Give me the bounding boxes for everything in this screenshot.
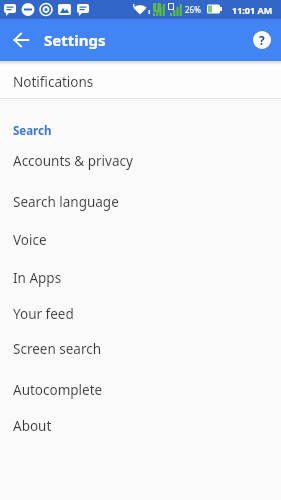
staticText: Settings — [44, 30, 106, 50]
staticText: About — [13, 417, 52, 435]
staticText: 11:01 AM — [232, 4, 273, 16]
staticText: Screen search — [13, 340, 102, 358]
staticText: Search language — [13, 193, 119, 211]
staticText: 26% — [185, 4, 201, 15]
staticText: Your feed — [13, 305, 74, 323]
staticText: Notifications — [13, 73, 94, 91]
staticText: Search — [13, 123, 52, 139]
staticText: Autocomplete — [13, 381, 103, 399]
staticText: Voice — [13, 231, 47, 249]
staticText: Accounts & privacy — [13, 152, 133, 170]
staticText: ? — [259, 32, 265, 48]
staticText: In Apps — [13, 269, 62, 287]
